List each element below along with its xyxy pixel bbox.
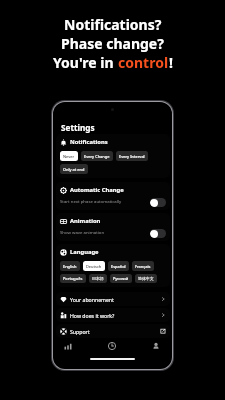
staticText: Phase change? [61, 34, 164, 53]
staticText: Only at end [63, 167, 85, 172]
button[interactable]: Русский [110, 274, 132, 283]
button[interactable]: Automatic Change [56, 182, 170, 210]
staticText: Never [63, 154, 75, 159]
staticText: Русский [113, 276, 129, 281]
button[interactable]: Statistics [61, 339, 75, 353]
staticText: Support [70, 328, 90, 335]
button[interactable]: Timer [105, 339, 119, 353]
button[interactable]: Only at end [60, 164, 88, 174]
staticText: Automatic Change [70, 186, 124, 194]
button[interactable]: English [60, 261, 80, 271]
staticText: Start next phase automatically [60, 198, 122, 204]
staticText: Notifications [70, 138, 108, 146]
button[interactable]: Deutsch [83, 261, 105, 271]
button[interactable]: Français [132, 261, 154, 271]
staticText: control [118, 53, 169, 72]
button[interactable]: Support [56, 324, 170, 338]
staticText: Settings [61, 122, 95, 133]
staticText: Français [135, 264, 151, 269]
staticText: English [63, 264, 77, 269]
staticText: Your abonnement [70, 296, 114, 303]
staticText: You're in [53, 53, 118, 72]
staticText: Show wave animation [60, 229, 105, 235]
button[interactable]: Every Interval [116, 151, 148, 161]
staticText: Language [70, 248, 99, 256]
button[interactable]: Profile [149, 339, 163, 353]
button[interactable]: Español [108, 261, 129, 271]
staticText: How does it work? [70, 312, 115, 319]
button[interactable]: 日本語 [89, 274, 107, 283]
staticText: Deutsch [86, 264, 102, 269]
button[interactable]: 简体中文 [135, 274, 157, 283]
staticText: Español [111, 264, 126, 269]
staticText: ! [169, 53, 173, 72]
staticText: 日本語 [92, 276, 104, 281]
button[interactable]: Never [60, 151, 78, 161]
button[interactable]: How does it work? [56, 308, 170, 322]
staticText: Every Change [84, 154, 110, 159]
button[interactable]: Animation [56, 213, 170, 241]
staticText: Português [63, 276, 83, 281]
staticText: 简体中文 [138, 276, 154, 281]
button[interactable]: Every Change [81, 151, 113, 161]
button[interactable]: Your abonnement [56, 292, 170, 306]
staticText: Notifications? [64, 15, 162, 34]
staticText: Every Interval [119, 154, 145, 159]
staticText: Animation [70, 217, 101, 225]
button[interactable]: Português [60, 274, 86, 283]
